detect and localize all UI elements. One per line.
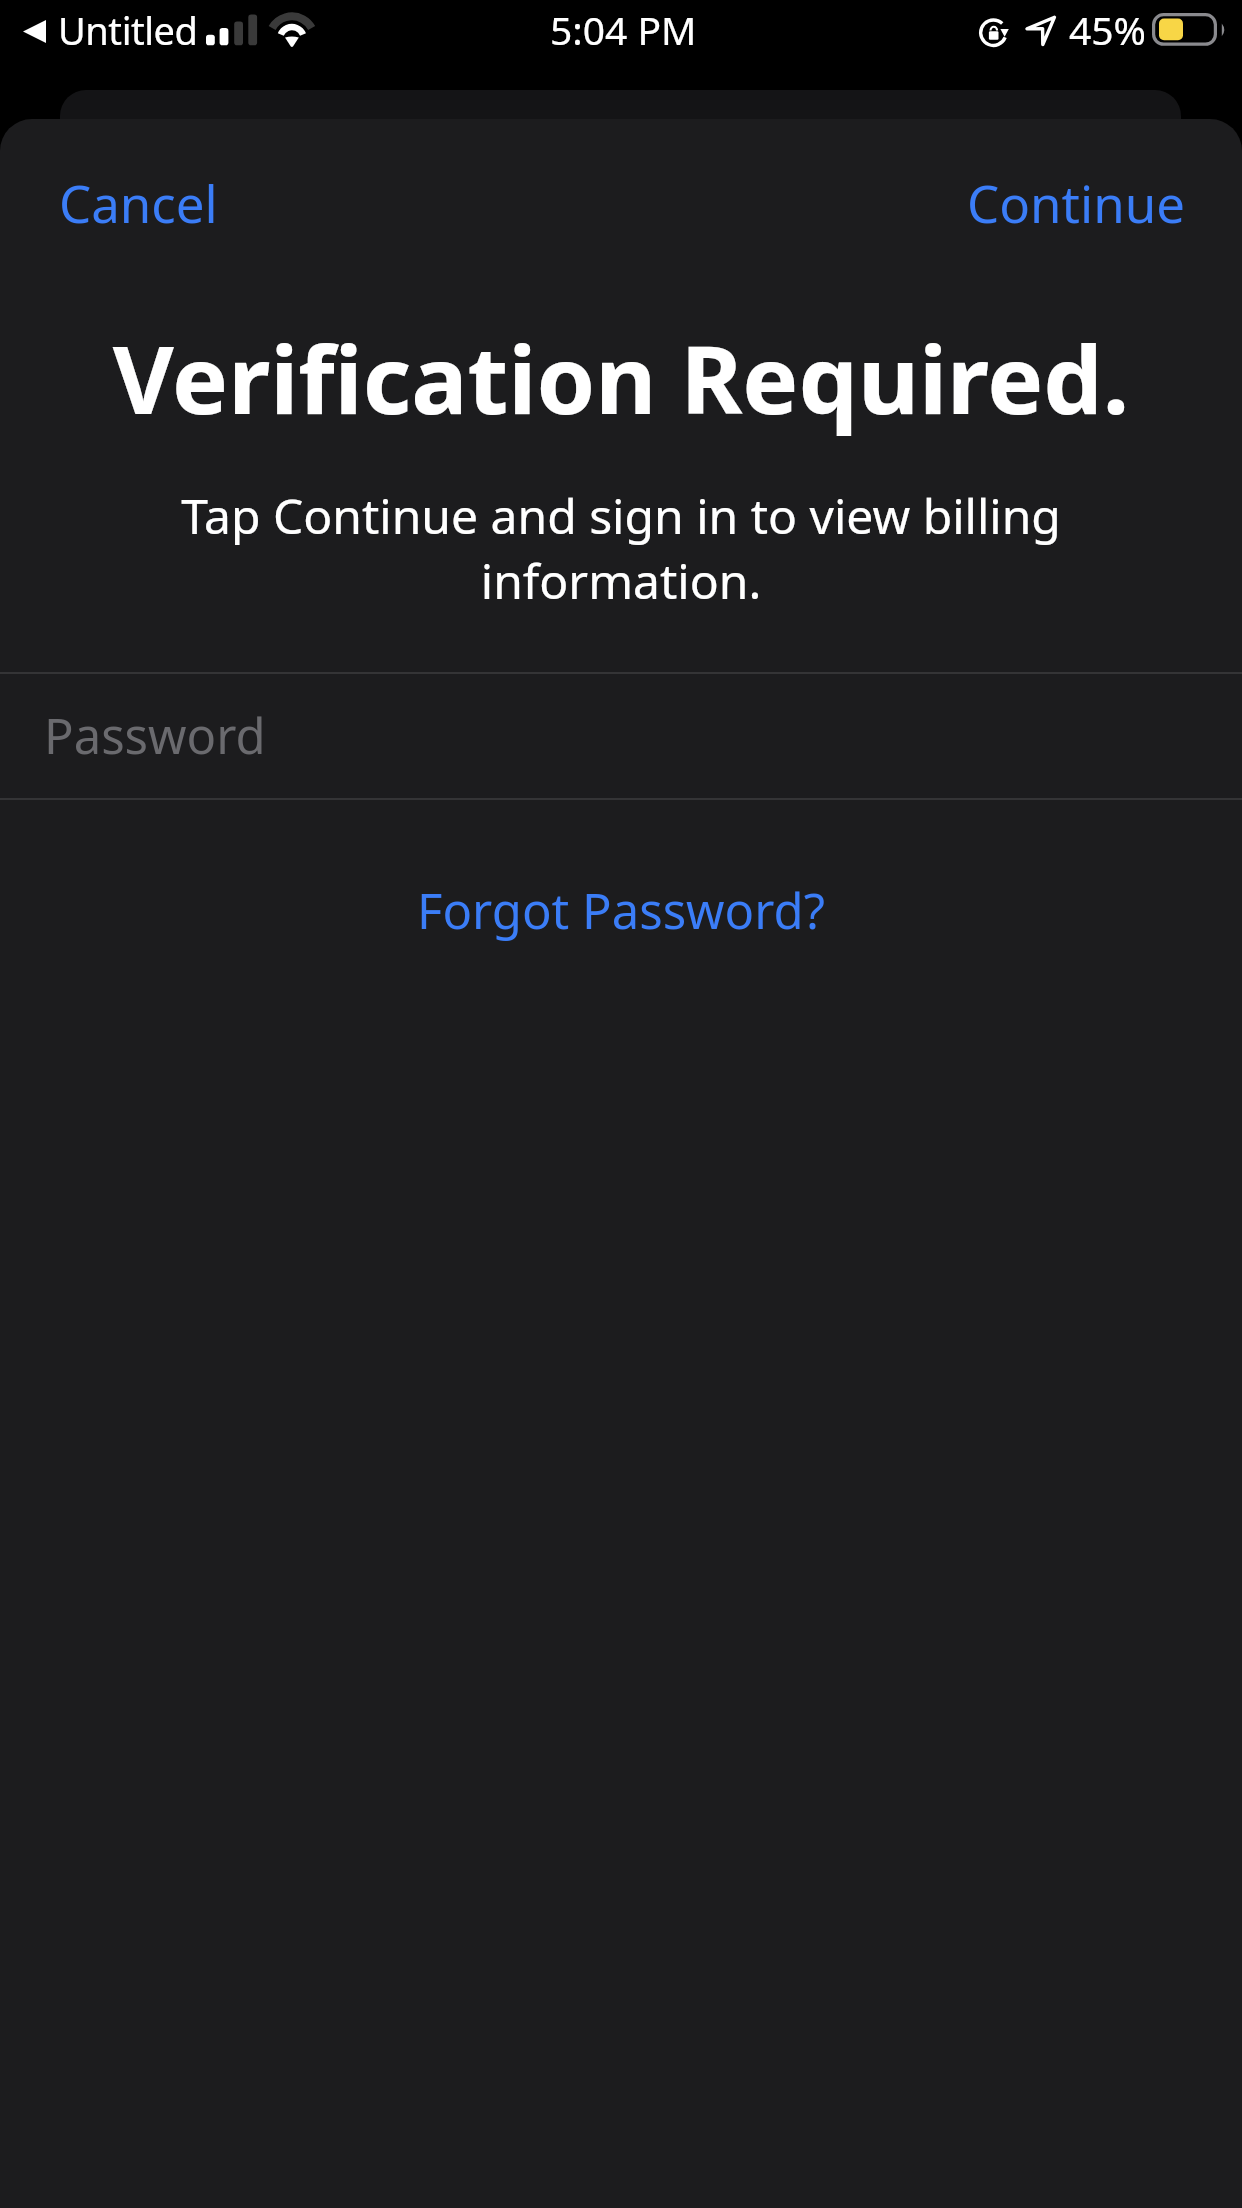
staticText: Continue	[967, 168, 1185, 237]
staticText: Cancel	[59, 168, 218, 237]
button[interactable]: Continue	[947, 152, 1205, 252]
other: Rotation Lock	[978, 17, 1012, 48]
button[interactable]: Password	[0, 674, 1242, 799]
staticText: Untitled	[58, 4, 198, 56]
staticText: 5:04 PM	[550, 3, 697, 56]
staticText: Forgot Password?	[417, 877, 825, 944]
button[interactable]: Back to Untitled	[13, 0, 173, 62]
other: Location	[1026, 16, 1056, 46]
staticText: 45%	[1069, 3, 1147, 56]
button[interactable]: Forgot Password?	[393, 855, 849, 966]
button[interactable]: Cancel	[39, 152, 238, 252]
staticText: Verification Required.	[0, 314, 1242, 442]
staticText: Password	[44, 702, 266, 769]
staticText: Tap Continue and sign in to view billing…	[86, 483, 1156, 613]
